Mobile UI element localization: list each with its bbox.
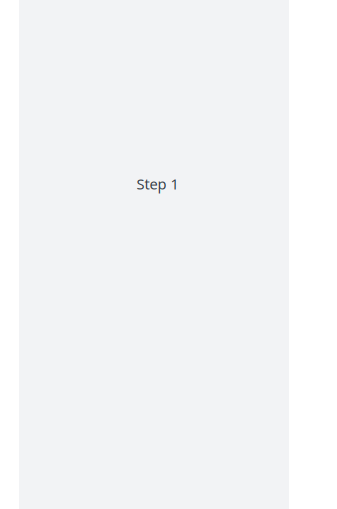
staticText: Step 1 <box>136 174 178 193</box>
